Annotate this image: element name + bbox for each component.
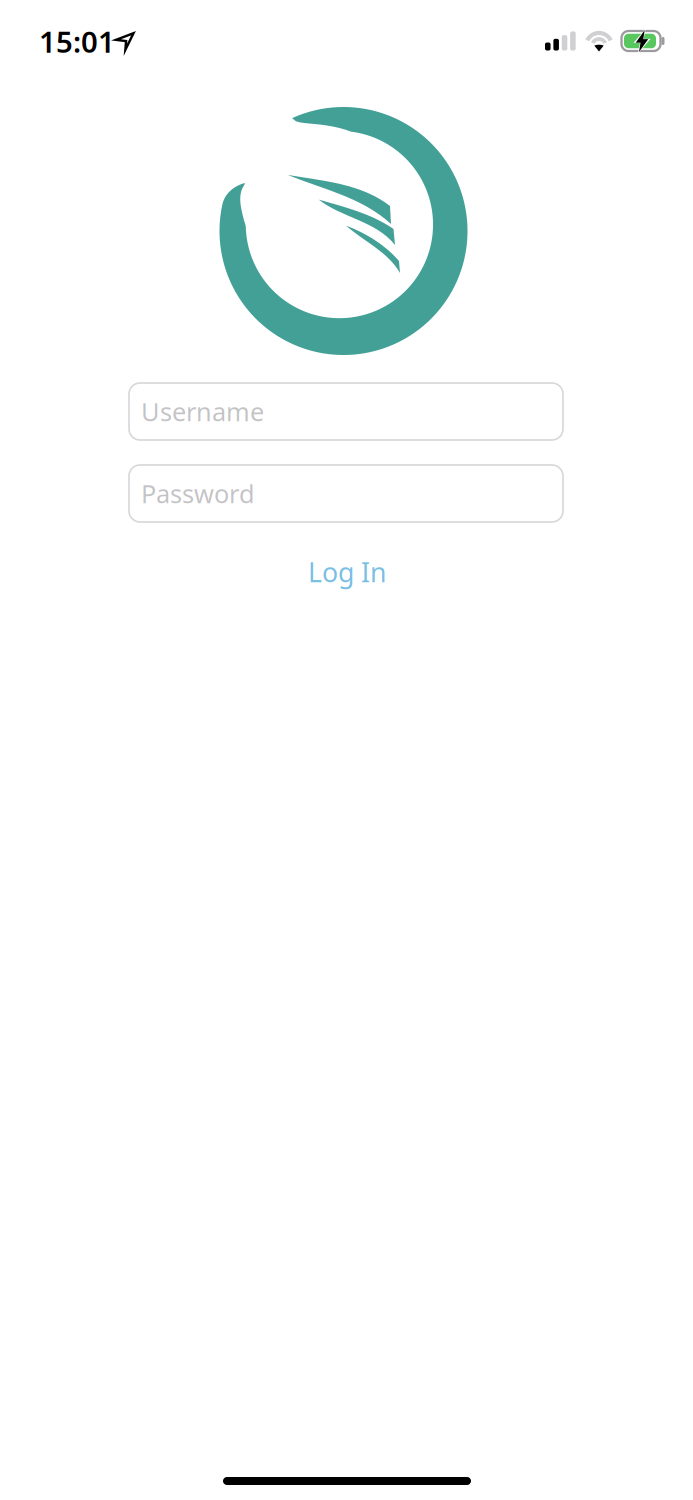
staticText: Log In <box>308 554 386 590</box>
staticText: Username <box>141 395 264 428</box>
staticText: 15:01 <box>39 22 115 61</box>
button[interactable]: Log In <box>277 546 417 598</box>
staticText: Password <box>141 477 255 510</box>
